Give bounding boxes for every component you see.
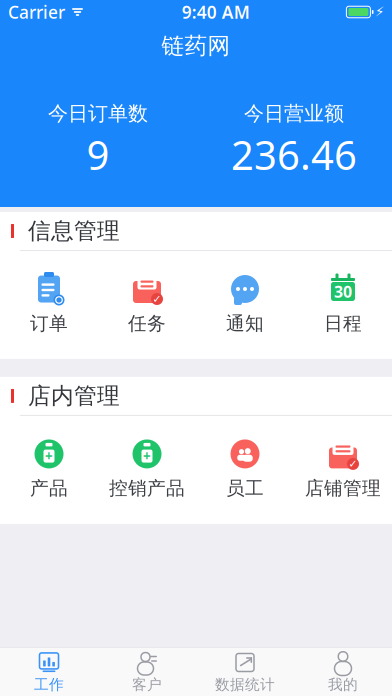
staticText: 今日营业额: [244, 101, 344, 126]
staticText: 我的: [328, 675, 358, 693]
staticText: +: [45, 447, 53, 465]
button[interactable]: 通知: [196, 267, 294, 341]
staticText: 信息管理: [28, 217, 120, 245]
staticText: 30: [334, 281, 352, 302]
button[interactable]: 客户: [98, 646, 196, 696]
button[interactable]: 数据统计: [196, 646, 294, 696]
staticText: 今日订单数: [48, 101, 148, 126]
staticText: 任务: [128, 312, 166, 335]
staticText: 工作: [34, 675, 64, 693]
staticText: Carrier: [8, 0, 65, 23]
staticText: +: [143, 447, 151, 465]
staticText: ✓: [152, 293, 161, 305]
staticText: 通知: [226, 312, 264, 335]
staticText: 客户: [132, 675, 162, 693]
staticText: 控销产品: [109, 477, 185, 500]
button[interactable]: ✓: [98, 267, 196, 341]
staticText: 员工: [226, 477, 264, 500]
staticText: 日程: [324, 312, 362, 335]
button[interactable]: ✓: [294, 432, 392, 506]
button[interactable]: 30: [294, 267, 392, 341]
button[interactable]: 我的: [294, 646, 392, 696]
staticText: 链药网: [161, 32, 230, 60]
staticText: 9:40 AM: [182, 0, 250, 23]
button[interactable]: +: [0, 432, 98, 506]
staticText: 订单: [30, 312, 68, 335]
staticText: 数据统计: [215, 675, 275, 693]
staticText: 9: [86, 128, 109, 181]
button[interactable]: 订单: [0, 267, 98, 341]
button[interactable]: 工作: [0, 646, 98, 696]
button[interactable]: +: [98, 432, 196, 506]
button[interactable]: 员工: [196, 432, 294, 506]
staticText: ✓: [348, 458, 357, 470]
staticText: ⚡︎: [375, 4, 384, 19]
staticText: 236.46: [231, 128, 357, 181]
staticText: 店铺管理: [305, 477, 381, 500]
staticText: 产品: [30, 477, 68, 500]
staticText: 店内管理: [28, 382, 120, 410]
